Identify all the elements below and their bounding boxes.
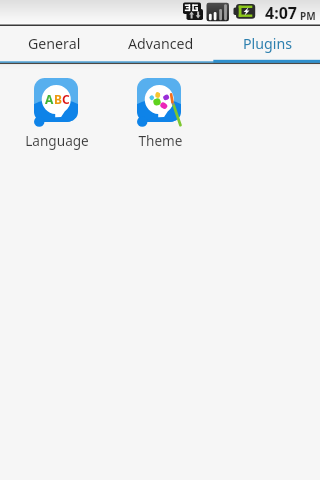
button[interactable]: Language [34,78,78,122]
staticText: General [28,34,81,53]
staticText: Language [25,131,89,150]
staticText: Theme [138,131,183,150]
staticText: B [54,91,62,107]
staticText: 4:07 [265,2,297,24]
staticText: Advanced [128,34,194,53]
staticText: PM [300,9,316,23]
staticText: Plugins [243,34,292,53]
staticText: A [45,91,54,107]
staticText: C [62,91,70,107]
button[interactable]: Plugins [213,26,320,60]
button[interactable]: Theme [109,78,209,150]
button[interactable]: Advanced [106,26,213,60]
button[interactable]: General [0,26,106,60]
button[interactable]: Language [6,78,106,150]
button[interactable]: Theme [137,78,181,122]
